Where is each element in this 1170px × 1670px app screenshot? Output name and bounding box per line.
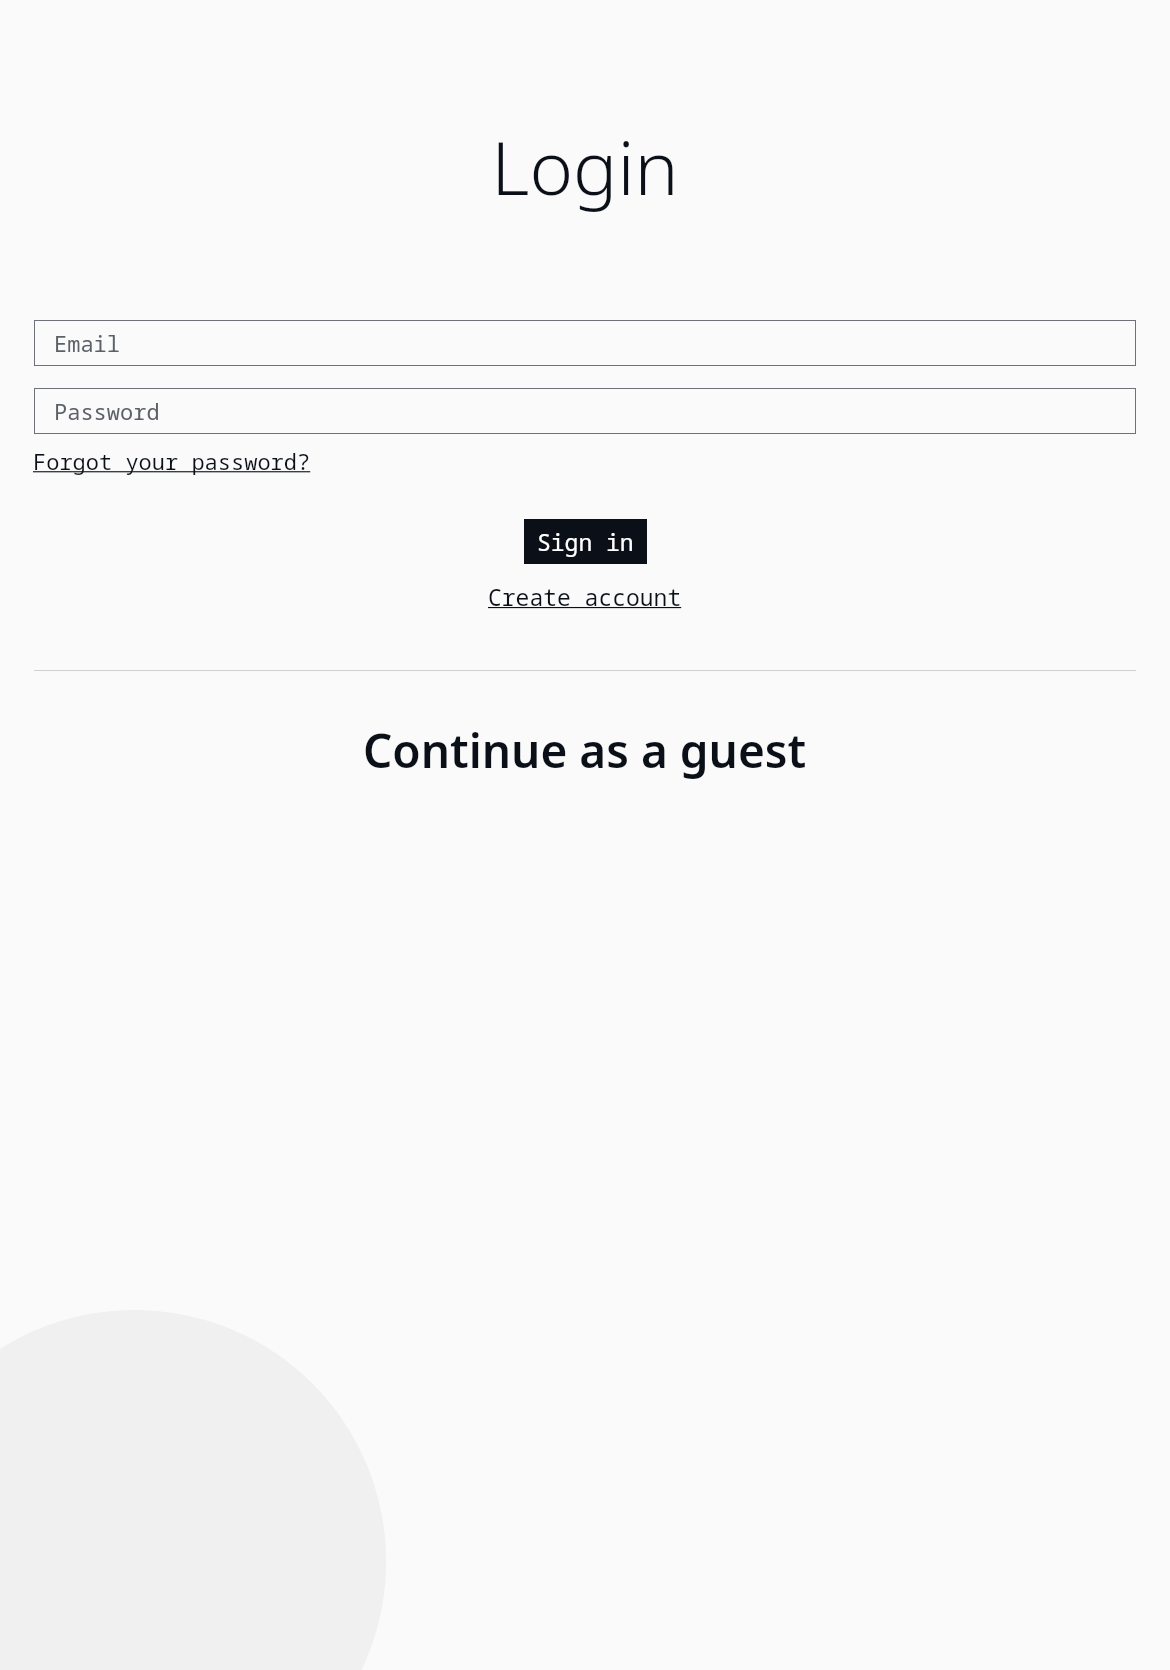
button[interactable]: Forgot your password?: [33, 446, 311, 476]
button[interactable]: Continue as a guest: [0, 719, 1170, 782]
staticText: Email: [54, 328, 121, 358]
staticText: Continue as a guest: [363, 719, 807, 782]
button[interactable]: Sign in: [524, 519, 647, 564]
button[interactable]: Create account: [488, 581, 682, 612]
staticText: Sign in: [537, 526, 634, 557]
button[interactable]: Email: [34, 320, 1136, 366]
button[interactable]: Password: [34, 388, 1136, 434]
staticText: Password: [54, 396, 160, 426]
staticText: Create account: [488, 581, 682, 612]
staticText: Login: [0, 116, 1170, 217]
staticText: Forgot your password?: [33, 446, 311, 476]
